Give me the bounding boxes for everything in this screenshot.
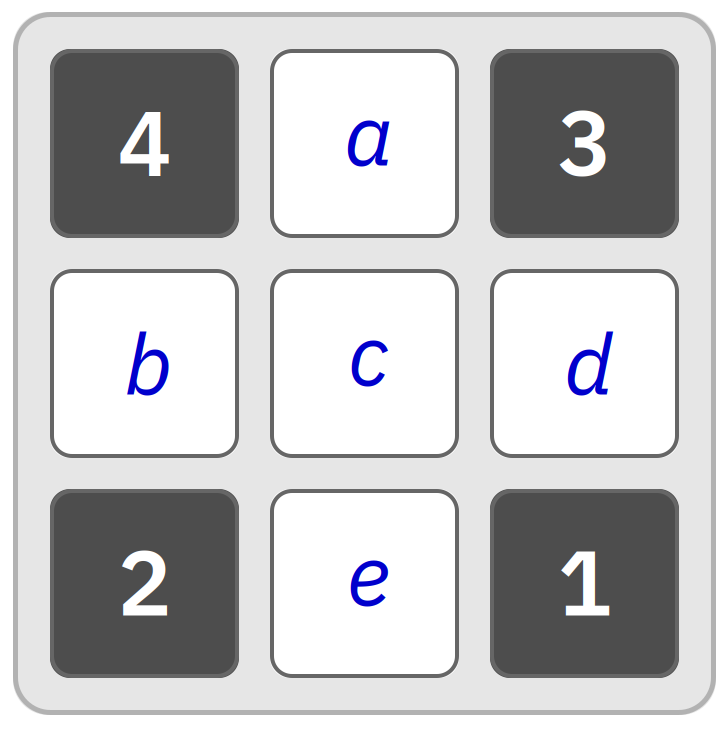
staticText: a: [343, 78, 393, 189]
staticText: 3: [557, 83, 611, 200]
button[interactable]: b: [50, 269, 239, 458]
button[interactable]: 3: [490, 49, 679, 238]
staticText: 4: [117, 83, 171, 200]
button[interactable]: 1: [490, 489, 679, 678]
staticText: e: [346, 518, 390, 629]
staticText: 1: [557, 523, 611, 640]
staticText: 2: [117, 523, 171, 640]
staticText: d: [563, 307, 613, 418]
button[interactable]: c: [270, 269, 459, 458]
button[interactable]: d: [490, 269, 679, 458]
button[interactable]: 4: [50, 49, 239, 238]
staticText: c: [347, 298, 389, 409]
button[interactable]: 2: [50, 489, 239, 678]
button[interactable]: a: [270, 49, 459, 238]
button[interactable]: e: [270, 489, 459, 678]
staticText: b: [124, 307, 173, 418]
